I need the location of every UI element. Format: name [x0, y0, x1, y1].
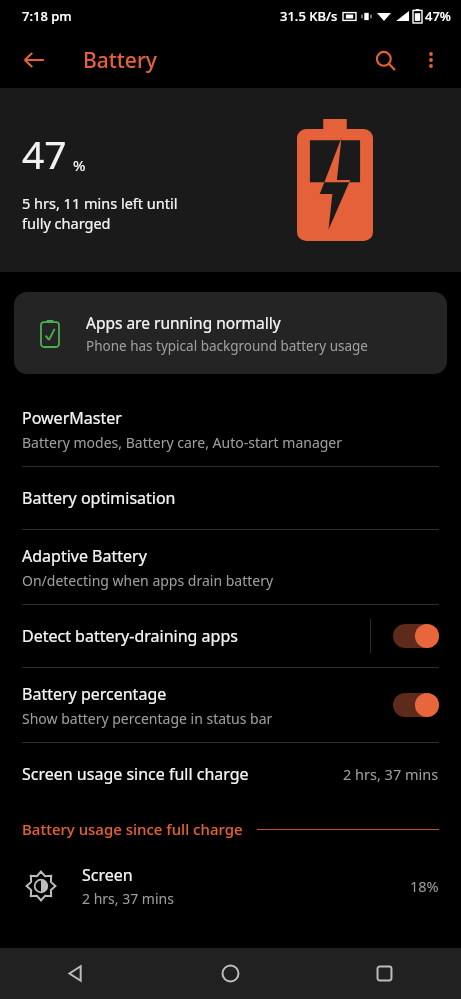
button[interactable]: Apps are running normally: [14, 292, 447, 374]
staticText: %: [73, 155, 86, 175]
staticText: Phone has typical background battery usa…: [86, 337, 368, 355]
staticText: On/detecting when apps drain battery: [22, 571, 274, 590]
staticText: 2 hrs, 37 mins: [343, 764, 439, 784]
staticText: 7:18 pm: [22, 7, 72, 25]
staticText: 47: [22, 127, 67, 180]
staticText: 31.5 KB/s: [280, 7, 338, 25]
staticText: Battery usage since full charge: [22, 819, 243, 839]
staticText: Battery modes, Battery care, Auto-start …: [22, 433, 343, 452]
staticText: PowerMaster: [22, 407, 122, 429]
button[interactable]: Battery percentage: [0, 668, 461, 742]
staticText: Apps are running normally: [86, 312, 281, 333]
staticText: Battery percentage: [22, 683, 167, 705]
button[interactable]: Back: [12, 38, 56, 82]
staticText: Detect battery-draining apps: [22, 625, 238, 647]
button[interactable]: Screen usage since full charge: [0, 743, 461, 805]
staticText: 47%: [425, 7, 451, 25]
staticText: 18%: [410, 876, 439, 896]
staticText: Battery optimisation: [22, 487, 176, 509]
button[interactable]: Screen: [0, 855, 461, 917]
button[interactable]: Battery optimisation: [0, 467, 461, 529]
staticText: Screen usage since full charge: [22, 763, 343, 785]
staticText: Adaptive Battery: [22, 545, 147, 567]
staticText: 2 hrs, 37 mins: [82, 889, 174, 908]
button[interactable]: Detect battery-draining apps: [0, 605, 461, 667]
button[interactable]: More options: [409, 38, 453, 82]
button[interactable]: Search: [361, 36, 409, 84]
button[interactable]: Home: [153, 948, 307, 999]
button[interactable]: Recent apps: [307, 948, 461, 999]
staticText: Screen: [82, 864, 133, 886]
staticText: Show battery percentage in status bar: [22, 709, 273, 728]
staticText: 5 hrs, 11 mins left until fully charged: [22, 193, 178, 234]
button[interactable]: Back: [0, 948, 153, 999]
button[interactable]: PowerMaster: [0, 392, 461, 466]
staticText: Battery: [83, 46, 157, 75]
button[interactable]: Adaptive Battery: [0, 530, 461, 604]
